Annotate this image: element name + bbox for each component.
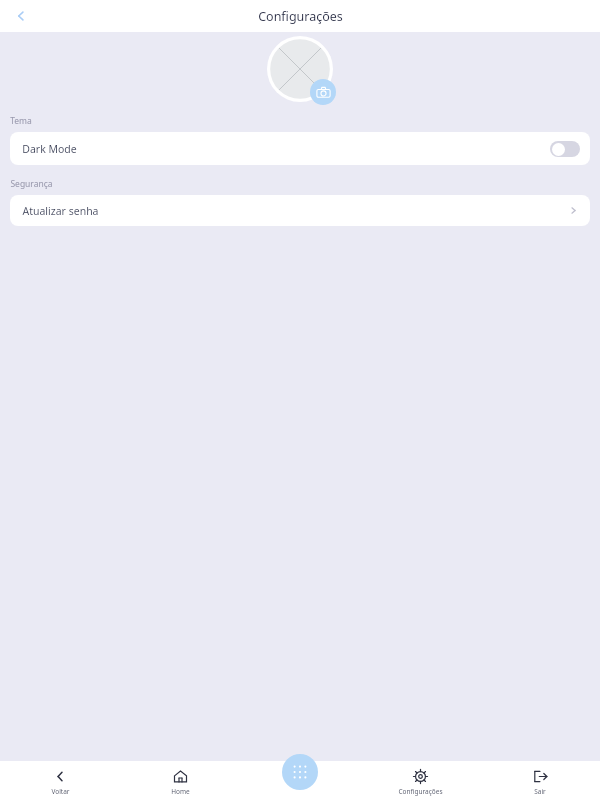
button[interactable]: Configurações [360, 765, 480, 796]
button[interactable]: Dark Mode [10, 132, 590, 165]
staticText: Configurações [398, 787, 443, 796]
staticText: Voltar [51, 787, 70, 796]
staticText: Segurança [10, 178, 53, 190]
button[interactable]: Voltar [0, 765, 120, 796]
button[interactable]: Menu [282, 754, 318, 790]
staticText: Home [171, 787, 190, 796]
button[interactable]: Voltar [6, 1, 36, 31]
staticText: Atualizar senha [22, 204, 99, 218]
button[interactable]: Alterar foto [310, 79, 336, 105]
button[interactable]: Dark Mode [550, 141, 580, 157]
button[interactable]: Home [120, 765, 240, 796]
staticText: Sair [534, 787, 546, 796]
staticText: Configurações [258, 8, 343, 25]
staticText: Tema [10, 115, 32, 127]
staticText: Dark Mode [22, 142, 77, 156]
button[interactable]: Atualizar senha [10, 195, 590, 226]
button[interactable]: Sair [480, 765, 600, 796]
